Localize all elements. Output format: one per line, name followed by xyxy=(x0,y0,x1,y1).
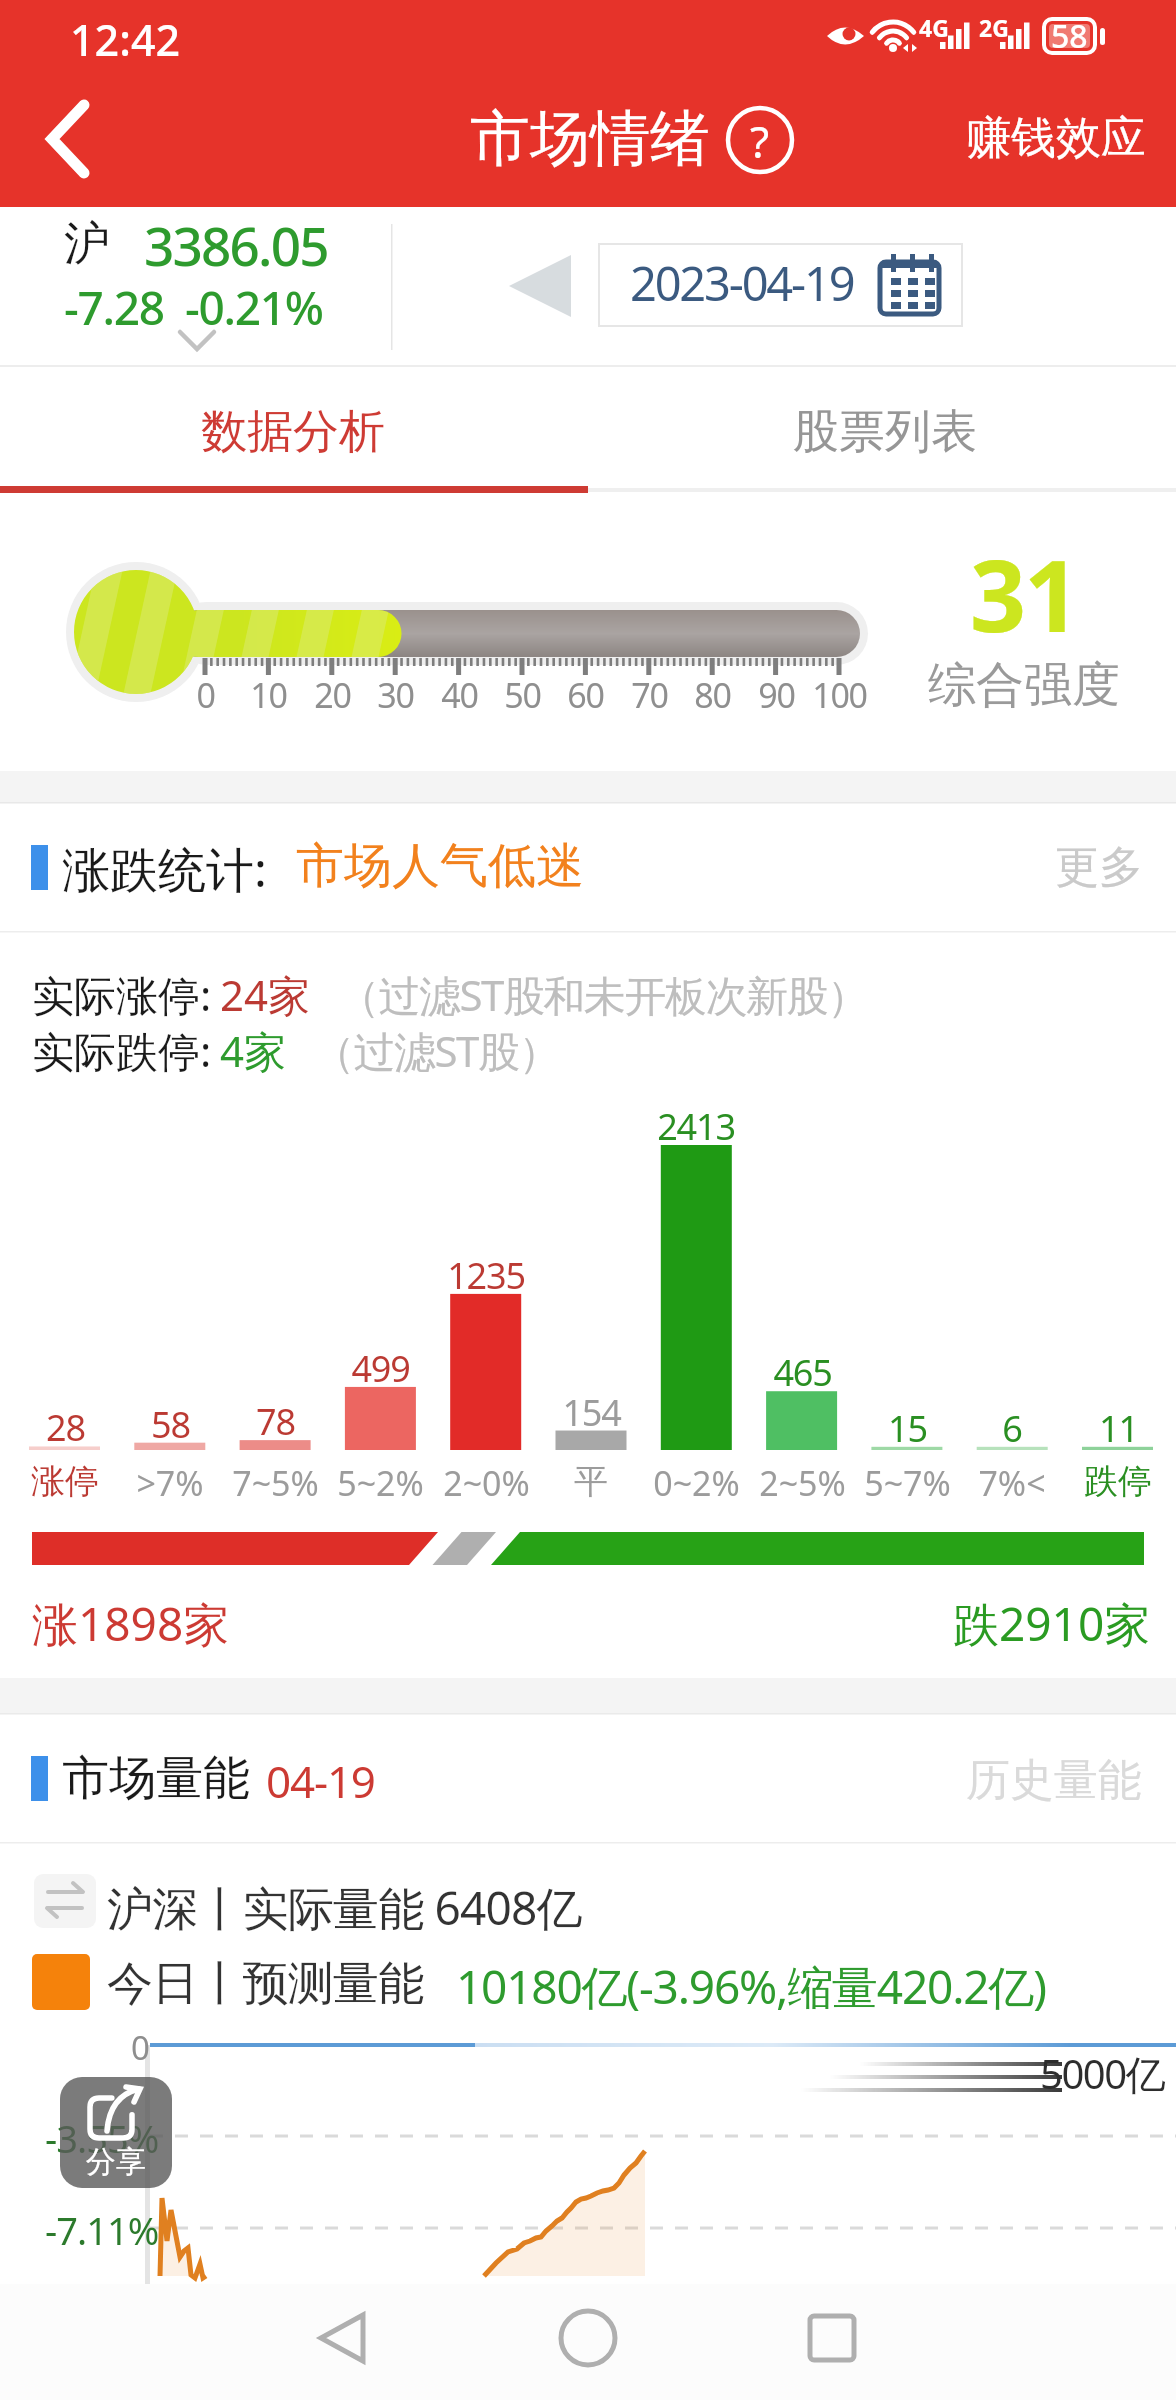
staticText: 04-19 xyxy=(266,1751,375,1811)
staticText: 40 xyxy=(441,672,478,718)
staticText: -7.11% xyxy=(45,2204,159,2256)
button[interactable]: Home xyxy=(533,2283,643,2393)
staticText: 5~2% xyxy=(337,1460,424,1506)
staticText: 10180亿(-3.96%,缩量420.2亿) xyxy=(456,1955,1046,2018)
staticText: 4G xyxy=(919,12,949,43)
staticText: 市场量能 xyxy=(62,1749,250,1808)
staticText: 0 xyxy=(131,2025,150,2070)
button[interactable] xyxy=(588,370,1176,488)
button[interactable] xyxy=(1040,830,1150,900)
staticText: 沪 xyxy=(64,215,110,273)
staticText: 2~0% xyxy=(443,1460,530,1506)
staticText: 70 xyxy=(631,672,668,718)
staticText: 更多 xyxy=(1055,840,1143,895)
staticText: 实际跌停: xyxy=(32,1022,223,1079)
staticText: 沪深丨实际量能 6408亿 xyxy=(107,1876,582,1939)
button[interactable] xyxy=(0,370,588,488)
staticText: 0~2% xyxy=(653,1460,740,1506)
staticText: 5~7% xyxy=(864,1460,951,1506)
button[interactable]: Help xyxy=(726,107,794,175)
staticText: 90 xyxy=(758,672,795,718)
button[interactable] xyxy=(599,244,962,326)
staticText: 78 xyxy=(256,1397,295,1446)
staticText: 4家 xyxy=(220,1022,287,1079)
staticText: 平 xyxy=(574,1460,608,1503)
staticText: 20 xyxy=(314,672,351,718)
staticText: 15 xyxy=(888,1404,927,1453)
staticText: -3.55% xyxy=(45,2112,159,2164)
button[interactable]: Previous day xyxy=(500,245,580,330)
staticText: ? xyxy=(750,111,770,171)
staticText: 0 xyxy=(196,672,215,718)
staticText: 实际涨停: xyxy=(32,966,223,1023)
button[interactable]: Back xyxy=(287,2283,397,2393)
staticText: 7%< xyxy=(978,1460,1046,1506)
staticText: 11 xyxy=(1099,1404,1138,1453)
staticText: 2~5% xyxy=(759,1460,846,1506)
button[interactable] xyxy=(965,1740,1155,1812)
button[interactable]: Share xyxy=(60,2077,172,2188)
staticText: 465 xyxy=(773,1348,832,1397)
button[interactable]: Back xyxy=(22,85,142,205)
staticText: 涨1898家 xyxy=(32,1592,230,1655)
staticText: 跌2910家 xyxy=(953,1592,1151,1655)
staticText: （过滤ST股和未开板次新股） xyxy=(338,966,868,1023)
staticText: 1235 xyxy=(447,1251,525,1300)
staticText: 5000亿 xyxy=(1040,2046,1165,2101)
staticText: 3386.05 xyxy=(144,209,328,281)
staticText: 30 xyxy=(377,672,414,718)
staticText: 综合强度 xyxy=(928,655,1120,715)
staticText: 赚钱效应 xyxy=(966,110,1146,167)
staticText: 12:42 xyxy=(70,10,181,69)
staticText: 31 xyxy=(970,527,1079,660)
staticText: 股票列表 xyxy=(793,403,977,461)
staticText: 154 xyxy=(562,1388,621,1437)
staticText: 58 xyxy=(1051,14,1088,58)
staticText: 10 xyxy=(250,672,287,718)
staticText: 涨停 xyxy=(31,1460,99,1503)
staticText: 市场情绪 xyxy=(470,101,710,177)
staticText: 涨跌统计: xyxy=(62,836,267,902)
staticText: 28 xyxy=(46,1403,85,1452)
staticText: -7.28 -0.21% xyxy=(64,276,323,339)
staticText: 2G xyxy=(979,12,1009,43)
staticText: 80 xyxy=(694,672,731,718)
staticText: 60 xyxy=(567,672,604,718)
staticText: 分享 xyxy=(86,2143,146,2181)
button[interactable] xyxy=(950,98,1156,182)
button[interactable]: Recents xyxy=(777,2283,887,2393)
staticText: 2023-04-19 xyxy=(630,251,854,315)
staticText: 今日丨预测量能 xyxy=(107,1955,424,2013)
staticText: 50 xyxy=(504,672,541,718)
staticText: 24家 xyxy=(220,966,311,1023)
staticText: 58 xyxy=(151,1400,190,1449)
staticText: 499 xyxy=(351,1344,410,1393)
staticText: （过滤ST股） xyxy=(313,1022,559,1079)
staticText: 历史量能 xyxy=(966,1753,1142,1808)
staticText: 6 xyxy=(1002,1404,1022,1453)
staticText: 2413 xyxy=(657,1102,735,1151)
staticText: >7% xyxy=(136,1460,204,1506)
staticText: 7~5% xyxy=(232,1460,319,1506)
staticText: 市场人气低迷 xyxy=(296,836,584,896)
staticText: 100 xyxy=(812,672,867,718)
staticText: 跌停 xyxy=(1084,1460,1152,1503)
staticText: 数据分析 xyxy=(201,403,385,461)
